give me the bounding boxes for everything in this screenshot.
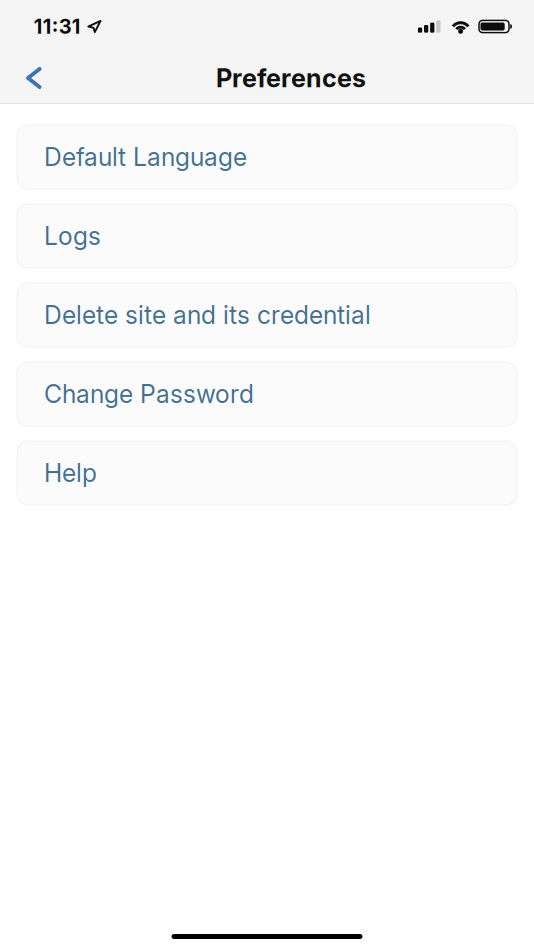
staticText: 11:31: [34, 14, 81, 39]
staticText: Preferences: [216, 63, 366, 93]
staticText: Change Password: [44, 379, 254, 409]
staticText: Default Language: [44, 142, 247, 172]
button[interactable]: Change Password: [17, 362, 517, 426]
staticText: Delete site and its credential: [44, 300, 371, 330]
button[interactable]: Back: [0, 53, 62, 103]
staticText: Help: [44, 458, 97, 488]
button[interactable]: Help: [17, 441, 517, 505]
staticText: Logs: [44, 221, 101, 251]
button[interactable]: Default Language: [17, 125, 517, 189]
button[interactable]: Delete site and its credential: [17, 283, 517, 347]
button[interactable]: Logs: [17, 204, 517, 268]
